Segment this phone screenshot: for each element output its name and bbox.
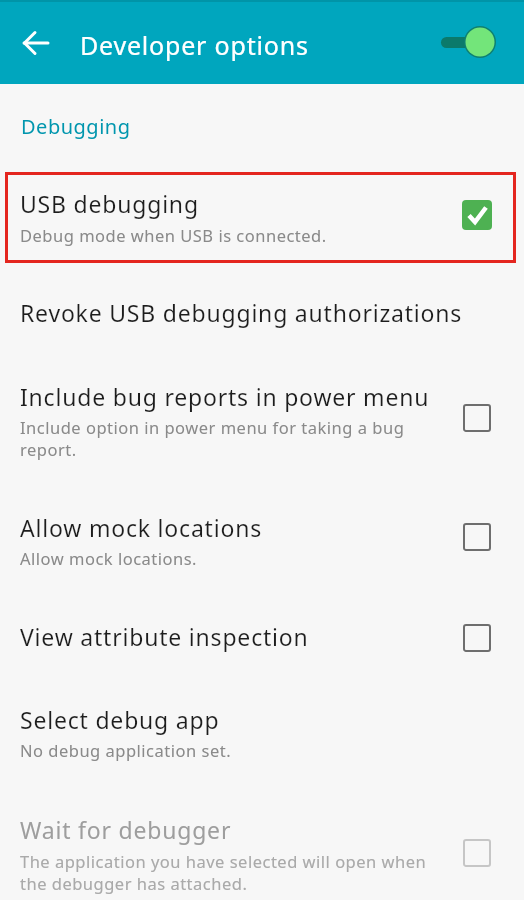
button[interactable]: USB debugging xyxy=(0,172,524,263)
staticText: Include option in power menu for taking … xyxy=(20,416,405,460)
staticText: View attribute inspection xyxy=(20,621,309,652)
staticText: Wait for debugger xyxy=(20,814,232,845)
staticText: The application you have selected will o… xyxy=(20,850,427,894)
button[interactable] xyxy=(434,18,500,66)
staticText: USB debugging xyxy=(20,188,199,219)
staticText: Allow mock locations. xyxy=(20,547,198,569)
staticText: Allow mock locations xyxy=(20,512,262,543)
staticText: Debug mode when USB is connected. xyxy=(20,224,327,246)
staticText: Debugging xyxy=(21,113,131,140)
staticText: Select debug app xyxy=(20,704,220,735)
button[interactable]: Revoke USB debugging authorizations xyxy=(0,281,524,345)
button[interactable]: Include bug reports in power menu xyxy=(0,365,524,470)
staticText: Developer options xyxy=(80,28,309,62)
staticText: Revoke USB debugging authorizations xyxy=(20,297,463,328)
staticText: Include bug reports in power menu xyxy=(20,381,430,412)
button[interactable]: View attribute inspection xyxy=(0,608,524,668)
staticText: No debug application set. xyxy=(20,739,232,761)
button[interactable]: Wait for debugger xyxy=(0,804,524,900)
button[interactable]: Allow mock locations xyxy=(0,500,524,580)
button[interactable]: Select debug app xyxy=(0,692,524,777)
button[interactable] xyxy=(14,21,58,65)
